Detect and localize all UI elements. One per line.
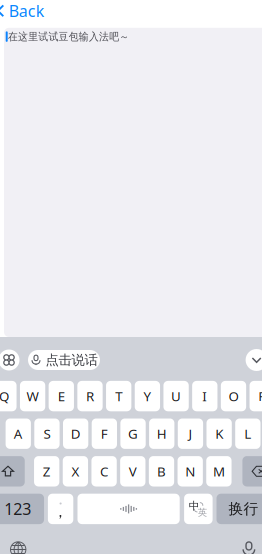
- staticText: W: [27, 387, 39, 405]
- button[interactable]: Keyboard panel: [0, 349, 19, 370]
- button[interactable]: U: [163, 381, 189, 411]
- staticText: U: [171, 387, 181, 405]
- staticText: R: [86, 387, 94, 405]
- staticText: 换行: [228, 500, 258, 518]
- staticText: Back: [9, 0, 45, 21]
- staticText: V: [129, 462, 137, 480]
- staticText: O: [228, 387, 238, 405]
- button[interactable]: P: [249, 381, 262, 411]
- button[interactable]: F: [92, 418, 117, 449]
- button[interactable]: 点击说话: [28, 350, 100, 370]
- staticText: Q: [0, 387, 9, 405]
- button[interactable]: T: [106, 381, 131, 411]
- button[interactable]: 中: [184, 494, 213, 524]
- button[interactable]: I: [192, 381, 217, 411]
- button[interactable]: Z: [34, 456, 59, 486]
- button[interactable]: [242, 456, 262, 486]
- staticText: J: [188, 425, 192, 442]
- staticText: D: [71, 425, 81, 442]
- button[interactable]: Q: [0, 381, 16, 411]
- button[interactable]: 123: [0, 494, 44, 524]
- staticText: ，: [53, 503, 68, 521]
- button[interactable]: A: [6, 418, 31, 449]
- staticText: 英: [198, 507, 207, 518]
- staticText: L: [244, 425, 251, 442]
- button[interactable]: M: [206, 456, 231, 486]
- staticText: Z: [43, 462, 51, 480]
- button[interactable]: 换行: [216, 494, 262, 524]
- button[interactable]: Dictation: [234, 534, 262, 554]
- staticText: B: [157, 462, 166, 480]
- button[interactable]: H: [149, 418, 174, 449]
- staticText: 在这里试试豆包输入法吧～: [8, 30, 140, 43]
- button[interactable]: ，: [48, 494, 73, 524]
- button[interactable]: Switch keyboard: [3, 534, 33, 554]
- button[interactable]: R: [77, 381, 103, 411]
- staticText: T: [115, 387, 122, 405]
- staticText: 123: [4, 498, 31, 519]
- button[interactable]: Hide keyboard: [246, 349, 262, 371]
- button[interactable]: [77, 494, 180, 524]
- staticText: G: [128, 425, 138, 442]
- button[interactable]: B: [149, 456, 174, 486]
- button[interactable]: O: [221, 381, 246, 411]
- staticText: X: [71, 462, 79, 480]
- staticText: 中: [189, 499, 200, 512]
- staticText: I: [202, 387, 207, 405]
- staticText: F: [101, 425, 108, 442]
- button[interactable]: D: [63, 418, 88, 449]
- staticText: K: [215, 425, 223, 442]
- staticText: S: [43, 425, 50, 442]
- button[interactable]: V: [120, 456, 145, 486]
- button[interactable]: K: [206, 418, 232, 449]
- button[interactable]: E: [49, 381, 74, 411]
- staticText: N: [185, 462, 195, 480]
- staticText: M: [213, 462, 225, 480]
- staticText: 点击说话: [45, 352, 97, 368]
- staticText: E: [58, 387, 65, 405]
- staticText: P: [258, 387, 262, 405]
- button[interactable]: C: [91, 456, 117, 486]
- staticText: H: [157, 425, 167, 442]
- button[interactable]: W: [20, 381, 45, 411]
- button[interactable]: S: [34, 418, 60, 449]
- button[interactable]: G: [120, 418, 146, 449]
- button[interactable]: Back: [0, 0, 58, 22]
- staticText: C: [100, 462, 108, 480]
- button[interactable]: L: [235, 418, 260, 449]
- button[interactable]: J: [178, 418, 203, 449]
- staticText: A: [14, 425, 23, 442]
- button[interactable]: Y: [135, 381, 160, 411]
- staticText: Y: [143, 387, 151, 405]
- button[interactable]: [0, 456, 25, 486]
- button[interactable]: N: [178, 456, 203, 486]
- button[interactable]: X: [63, 456, 88, 486]
